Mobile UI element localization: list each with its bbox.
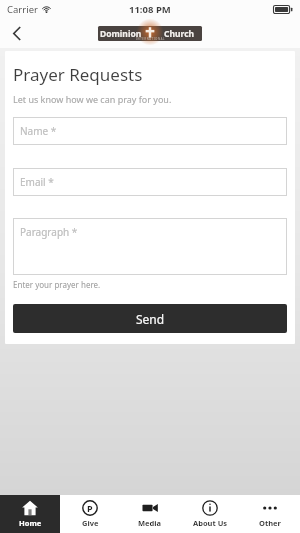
staticText: Dominion xyxy=(100,28,142,40)
staticText: I N T E R N A T I O N A L xyxy=(136,37,165,41)
staticText: Prayer Requests xyxy=(13,63,143,86)
staticText: Home xyxy=(19,518,42,528)
staticText: Church xyxy=(164,28,195,40)
staticText: Media xyxy=(138,518,162,528)
staticText: Enter your prayer here. xyxy=(13,279,101,290)
button[interactable]: Email * xyxy=(13,168,287,196)
staticText: Send xyxy=(136,311,165,327)
staticText: Email * xyxy=(20,175,54,189)
staticText: Name * xyxy=(20,124,57,138)
staticText: Let us know how we can pray for you. xyxy=(13,93,172,105)
button[interactable]: Paragraph * xyxy=(13,218,287,275)
staticText: About Us xyxy=(193,518,228,528)
staticText: Other xyxy=(259,518,281,528)
staticText: Carrier xyxy=(7,3,38,16)
button[interactable]: Back xyxy=(0,18,34,48)
button[interactable]: Home xyxy=(0,495,60,533)
button[interactable]: Other xyxy=(240,495,300,533)
button[interactable]: P xyxy=(60,495,120,533)
staticText: Give xyxy=(82,518,99,528)
button[interactable]: Media xyxy=(120,495,180,533)
button[interactable]: About Us xyxy=(180,495,240,533)
button[interactable]: Name * xyxy=(13,117,287,145)
staticText: 11:08 PM xyxy=(129,3,171,16)
staticText: P xyxy=(87,502,93,514)
button[interactable]: Send xyxy=(13,304,287,333)
staticText: Paragraph * xyxy=(20,225,78,239)
